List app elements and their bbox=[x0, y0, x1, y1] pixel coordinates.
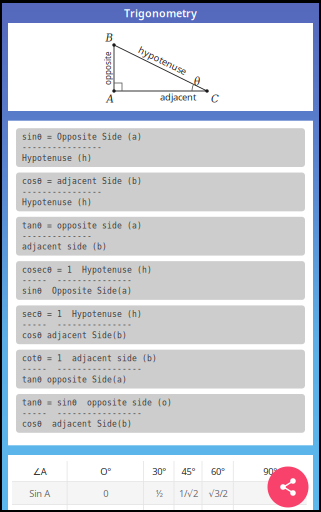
staticText: 0 bbox=[103, 487, 108, 500]
staticText: cosθ adjacent Side(b) bbox=[22, 419, 132, 428]
staticText: adjacent bbox=[160, 91, 196, 103]
staticText: ---------------- bbox=[22, 143, 102, 152]
staticText: 1/√2 bbox=[179, 487, 198, 500]
staticText: hypotenuse bbox=[136, 54, 188, 67]
button[interactable]: Share bbox=[267, 466, 308, 507]
staticText: ----- --------------- bbox=[22, 276, 132, 285]
staticText: 90° bbox=[263, 465, 277, 478]
staticText: ∠A bbox=[33, 465, 47, 478]
staticText: 60° bbox=[211, 465, 225, 478]
staticText: Hypotenuse (h) bbox=[22, 154, 92, 163]
staticText: tanθ = opposite side (a) bbox=[22, 221, 142, 230]
staticText: Trigonometry bbox=[124, 6, 197, 20]
staticText: cotθ = 1 adjacent side (b) bbox=[22, 354, 157, 363]
staticText: 30° bbox=[152, 465, 166, 478]
staticText: 1 bbox=[268, 487, 273, 500]
staticText: O° bbox=[100, 465, 111, 478]
staticText: cosecθ = 1 Hypotenuse (h) bbox=[22, 265, 152, 274]
staticText: A bbox=[106, 93, 113, 105]
staticText: √3/2 bbox=[209, 487, 228, 500]
staticText: cosθ adjacent Side(b) bbox=[22, 331, 127, 340]
staticText: sinθ Opposite Side(a) bbox=[22, 286, 132, 296]
staticText: Hypotenuse (h) bbox=[22, 198, 92, 207]
staticText: ----- ----------------- bbox=[22, 365, 142, 374]
staticText: adjacent side (b) bbox=[22, 242, 107, 251]
staticText: ----- --------------- bbox=[22, 320, 132, 329]
staticText: θ bbox=[194, 76, 200, 88]
staticText: sinθ = Opposite Side (a) bbox=[22, 132, 142, 142]
staticText: C bbox=[211, 93, 219, 105]
staticText: ----- ----------------- bbox=[22, 409, 142, 418]
staticText: ---------------- bbox=[22, 187, 102, 196]
staticText: tanθ opposite Side(a) bbox=[22, 375, 127, 384]
staticText: cosθ = adjacent Side (b) bbox=[22, 177, 142, 186]
staticText: ½ bbox=[156, 487, 163, 500]
staticText: -------------- bbox=[22, 232, 92, 241]
staticText: 45° bbox=[181, 465, 195, 478]
staticText: B bbox=[105, 32, 112, 44]
staticText: opposite bbox=[91, 63, 125, 73]
staticText: Sin A bbox=[29, 487, 50, 500]
staticText: secθ = 1 Hypotenuse (h) bbox=[22, 310, 142, 319]
staticText: tanθ = sinθ opposite side (o) bbox=[22, 398, 172, 407]
